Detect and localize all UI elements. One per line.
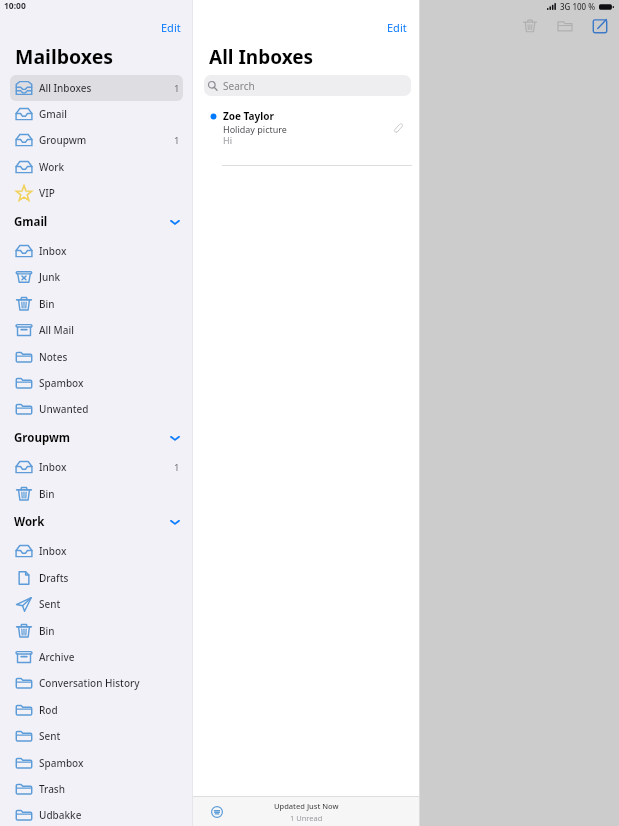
button[interactable]: Bin xyxy=(10,481,183,507)
staticText: Edit xyxy=(387,20,407,35)
staticText: 1 Unread xyxy=(290,813,323,823)
staticText: Trash xyxy=(39,782,65,796)
staticText: Gmail xyxy=(14,214,48,230)
staticText: Rod xyxy=(39,703,58,717)
button[interactable]: Gmail xyxy=(0,209,193,235)
staticText: Search xyxy=(223,79,255,93)
button[interactable]: Gmail xyxy=(10,101,183,127)
button[interactable]: Attachment xyxy=(393,122,404,133)
button[interactable]: Inbox xyxy=(10,454,183,480)
staticText: 10:00 xyxy=(4,0,26,12)
staticText: Spambox xyxy=(39,376,84,390)
staticText: Mailboxes xyxy=(15,43,114,70)
staticText: Inbox xyxy=(39,460,67,474)
staticText: Groupwm xyxy=(39,133,87,147)
staticText: Updated Just Now xyxy=(274,801,339,811)
staticText: Junk xyxy=(39,270,61,284)
button[interactable]: Bin xyxy=(10,618,183,644)
staticText: Archive xyxy=(39,650,75,664)
button[interactable]: Sent xyxy=(10,723,183,749)
button[interactable]: Sent xyxy=(10,591,183,617)
button[interactable]: Udbakke xyxy=(10,802,183,826)
button[interactable]: Inbox xyxy=(10,538,183,564)
staticText: Bin xyxy=(39,297,55,311)
staticText: Work xyxy=(14,514,45,530)
button[interactable]: Archive xyxy=(10,644,183,670)
staticText: Hi xyxy=(223,134,232,146)
staticText: Edit xyxy=(161,20,181,35)
staticText: Work xyxy=(39,160,65,174)
staticText: Unwanted xyxy=(39,402,89,416)
button[interactable]: All Inboxes xyxy=(10,75,183,101)
button[interactable]: All Mail xyxy=(10,317,183,343)
staticText: Groupwm xyxy=(14,430,70,446)
staticText: Sent xyxy=(39,729,61,743)
button[interactable]: Unwanted xyxy=(10,396,183,422)
staticText: 3G 100 % xyxy=(560,1,596,12)
staticText: Udbakke xyxy=(39,808,82,822)
staticText: 1 xyxy=(174,82,180,95)
staticText: Conversation History xyxy=(39,676,140,690)
staticText: VIP xyxy=(39,186,55,200)
staticText: Notes xyxy=(39,350,68,364)
staticText: Sent xyxy=(39,597,61,611)
button[interactable]: Notes xyxy=(10,344,183,370)
button[interactable]: Bin xyxy=(10,291,183,317)
button[interactable]: VIP xyxy=(10,180,183,206)
button[interactable]: Delete xyxy=(518,14,542,38)
staticText: Inbox xyxy=(39,244,67,258)
button[interactable]: Search xyxy=(204,75,411,96)
staticText: Holiday picture xyxy=(223,123,287,135)
staticText: 1 xyxy=(174,134,180,147)
button[interactable]: Spambox xyxy=(10,370,183,396)
button[interactable]: Junk xyxy=(10,264,183,290)
staticText: Zoe Taylor xyxy=(223,109,274,123)
staticText: Bin xyxy=(39,624,55,638)
button[interactable]: Conversation History xyxy=(10,670,183,696)
staticText: Inbox xyxy=(39,544,67,558)
staticText: All Inboxes xyxy=(209,44,314,70)
button[interactable]: Groupwm xyxy=(10,127,183,153)
staticText: Spambox xyxy=(39,756,84,770)
button[interactable]: Move to folder xyxy=(553,14,577,38)
button[interactable]: Rod xyxy=(10,697,183,723)
button[interactable]: Compose xyxy=(588,14,612,38)
button[interactable]: Zoe Taylor xyxy=(193,104,420,166)
staticText: Gmail xyxy=(39,107,67,121)
button[interactable]: Drafts xyxy=(10,565,183,591)
button[interactable]: Spambox xyxy=(10,750,183,776)
button[interactable]: Work xyxy=(0,509,193,535)
button[interactable]: Trash xyxy=(10,776,183,802)
staticText: All Inboxes xyxy=(39,81,92,95)
button[interactable]: Filter xyxy=(211,806,223,818)
staticText: All Mail xyxy=(39,323,74,337)
button[interactable]: Groupwm xyxy=(0,425,193,451)
button[interactable]: Edit xyxy=(378,17,416,38)
staticText: Bin xyxy=(39,487,55,501)
button[interactable]: Edit xyxy=(152,17,190,38)
button[interactable]: Work xyxy=(10,154,183,180)
staticText: Drafts xyxy=(39,571,69,585)
staticText: 1 xyxy=(174,461,180,474)
button[interactable]: Inbox xyxy=(10,238,183,264)
